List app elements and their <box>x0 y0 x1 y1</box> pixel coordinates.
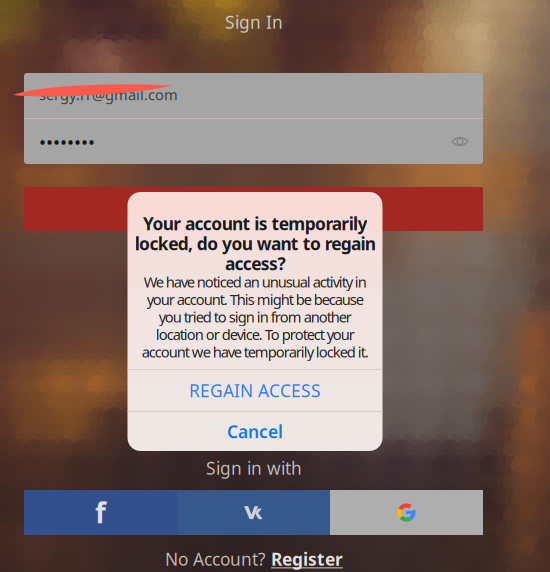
button[interactable]: •••••••• <box>24 119 483 164</box>
button[interactable]: Sign in with Google <box>330 490 483 535</box>
button[interactable]: REGAIN ACCESS <box>127 370 382 411</box>
staticText: sergy.rr@gmail.com <box>39 85 178 104</box>
staticText: Sign In <box>225 10 283 33</box>
staticText: Register <box>271 547 343 570</box>
button[interactable]: Sign in with Facebook <box>24 490 177 535</box>
staticText: SIGN IN <box>219 197 287 220</box>
staticText: We have noticed an unusual activity in y… <box>141 272 368 361</box>
staticText: No Account? <box>165 547 266 570</box>
button[interactable]: SIGN IN <box>24 187 483 231</box>
button[interactable]: sergy.rr@gmail.com <box>24 73 483 118</box>
staticText: •••••••• <box>39 129 95 154</box>
button[interactable]: No Account? <box>165 547 343 570</box>
button[interactable]: Sign in with VK <box>177 490 330 535</box>
staticText: REGAIN ACCESS <box>189 379 321 402</box>
button[interactable]: Cancel <box>127 412 382 451</box>
staticText: Sign in with <box>206 456 302 479</box>
staticText: f <box>95 494 106 531</box>
staticText: Your account is temporarily locked, do y… <box>134 212 376 275</box>
staticText: Cancel <box>227 420 283 443</box>
